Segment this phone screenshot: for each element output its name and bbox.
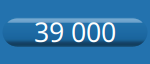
staticText: 39 000 xyxy=(34,14,116,50)
button[interactable]: 39 000 xyxy=(2,17,147,46)
